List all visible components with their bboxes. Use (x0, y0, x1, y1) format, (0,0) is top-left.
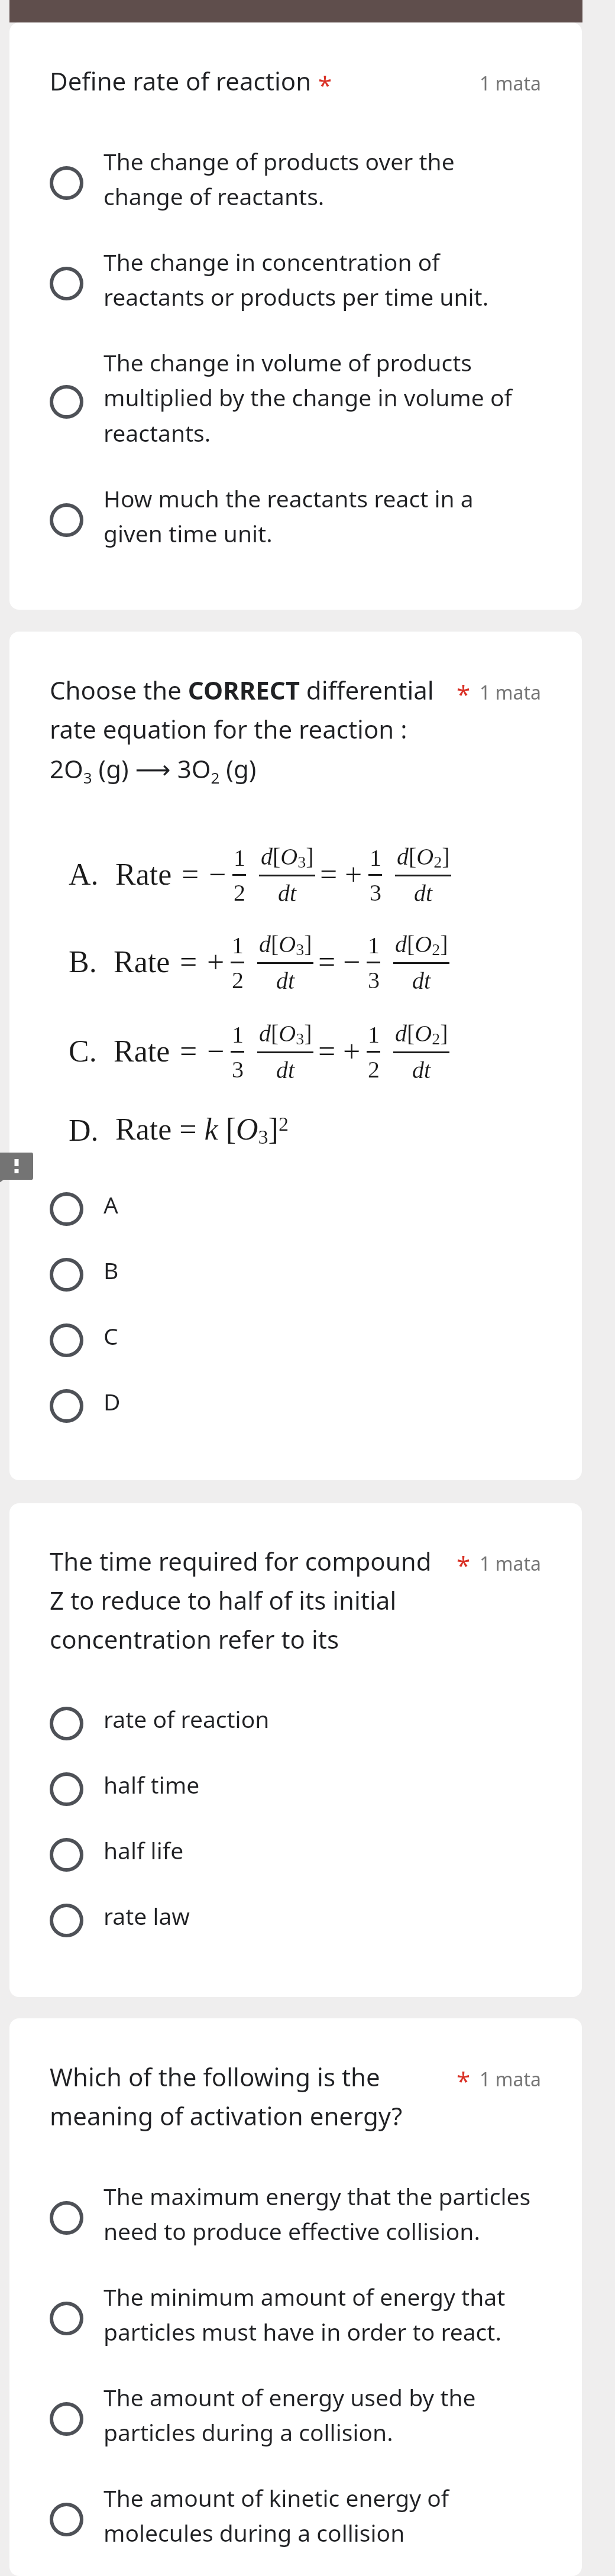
staticText: The amount of energy used by the particl… (103, 2381, 533, 2448)
button[interactable]: How much the reactants react in a given … (50, 483, 542, 549)
staticText: 1 (234, 844, 245, 870)
button[interactable]: The change in concentration of reactants… (50, 246, 542, 312)
staticText: dt (412, 967, 431, 993)
staticText: B. (69, 945, 97, 979)
staticText: The change of products over the change o… (103, 145, 533, 212)
staticText: Define rate of reaction (50, 64, 312, 98)
staticText: 3 (368, 967, 380, 993)
staticText: * (318, 68, 332, 102)
staticText: = (180, 1034, 198, 1069)
button[interactable]: C (50, 1320, 542, 1351)
staticText: Rate = k [O3]2 (115, 1112, 289, 1148)
staticText: dt (278, 880, 297, 906)
staticText: D (103, 1386, 533, 1417)
staticText: dt (412, 1057, 431, 1083)
staticText: * (457, 1548, 471, 1582)
button[interactable]: rate law (50, 1900, 542, 1931)
staticText: * (457, 2064, 471, 2098)
staticText: The time required for compound Z to redu… (50, 1544, 450, 1656)
staticText: The maximum energy that the particles ne… (103, 2180, 533, 2247)
staticText: 3 (232, 1056, 244, 1082)
staticText: = (318, 1034, 336, 1069)
button[interactable]: half life (50, 1834, 542, 1866)
staticText: 1 mata (480, 2066, 542, 2092)
staticText: The change in concentration of reactants… (103, 246, 533, 312)
button[interactable]: The amount of energy used by the particl… (50, 2381, 542, 2448)
staticText: Rate (114, 945, 170, 979)
staticText: = (182, 857, 199, 892)
staticText: 1 (368, 932, 380, 958)
staticText: = (180, 945, 198, 979)
staticText: The amount of kinetic energy of molecule… (103, 2482, 533, 2548)
button[interactable]: The amount of kinetic energy of molecule… (50, 2482, 542, 2548)
staticText: = (318, 945, 336, 979)
staticText: − (209, 857, 226, 892)
other: Warning (0, 1149, 33, 1186)
staticText: Choose the CORRECT differential rate equ… (50, 673, 450, 788)
staticText: − (343, 945, 361, 979)
staticText: D. (69, 1114, 99, 1148)
staticText: Rate (114, 1034, 170, 1069)
staticText: B (103, 1254, 533, 1286)
staticText: * (457, 677, 471, 711)
button[interactable]: A (50, 1189, 542, 1220)
staticText: + (345, 857, 362, 892)
staticText: 2 (232, 967, 244, 993)
staticText: + (343, 1034, 361, 1069)
staticText: 1 mata (480, 1551, 542, 1577)
staticText: 2 (234, 879, 245, 905)
staticText: The minimum amount of energy that partic… (103, 2281, 533, 2347)
staticText: dt (414, 880, 433, 906)
staticText: Rate (115, 857, 172, 892)
staticText: 1 mata (480, 679, 542, 706)
staticText: C. (69, 1034, 97, 1069)
staticText: rate of reaction (103, 1703, 533, 1734)
staticText: 1 (232, 1021, 244, 1047)
staticText: 1 (368, 1021, 380, 1047)
staticText: d[O3] (259, 1020, 312, 1048)
button[interactable]: The change of products over the change o… (50, 145, 542, 212)
button[interactable]: The maximum energy that the particles ne… (50, 2180, 542, 2247)
button[interactable]: rate of reaction (50, 1703, 542, 1734)
staticText: half life (103, 1834, 533, 1866)
staticText: 1 (232, 932, 244, 958)
staticText: − (207, 1034, 225, 1069)
staticText: half time (103, 1769, 533, 1800)
staticText: How much the reactants react in a given … (103, 483, 533, 549)
staticText: dt (276, 967, 295, 993)
staticText: 1 mata (480, 70, 542, 96)
staticText: dt (276, 1057, 295, 1083)
button[interactable]: The change in volume of products multipl… (50, 347, 542, 448)
button[interactable]: The minimum amount of energy that partic… (50, 2281, 542, 2347)
staticText: 1 (370, 844, 381, 870)
staticText: d[O2] (395, 931, 448, 959)
staticText: d[O2] (395, 1020, 448, 1048)
staticText: d[O3] (259, 931, 312, 959)
staticText: A (103, 1189, 533, 1220)
staticText: d[O3] (261, 843, 314, 871)
staticText: d[O2] (397, 843, 450, 871)
staticText: = (320, 857, 338, 892)
staticText: rate law (103, 1900, 533, 1931)
staticText: 2 (368, 1056, 380, 1082)
staticText: C (103, 1320, 533, 1351)
staticText: + (207, 945, 225, 979)
staticText: Which of the following is the meaning of… (50, 2060, 450, 2132)
staticText: A. (69, 857, 99, 892)
staticText: The change in volume of products multipl… (103, 347, 533, 448)
button[interactable]: half time (50, 1769, 542, 1800)
button[interactable]: D (50, 1386, 542, 1417)
staticText: 3 (370, 879, 381, 905)
button[interactable]: B (50, 1254, 542, 1286)
